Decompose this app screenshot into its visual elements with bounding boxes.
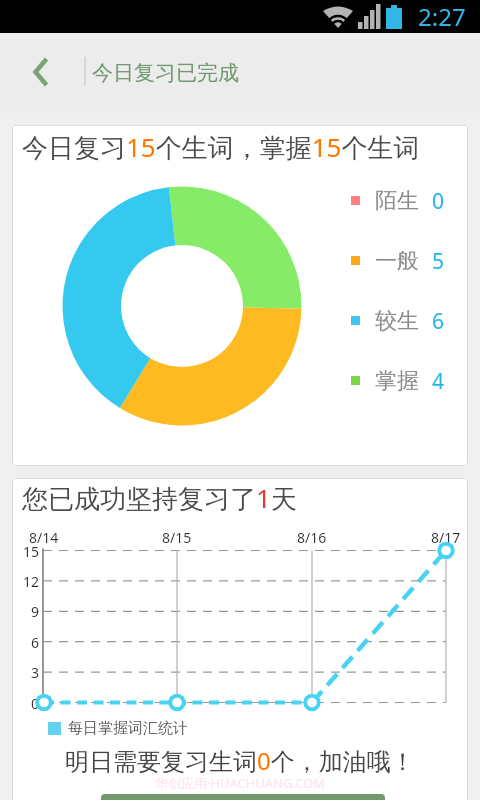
staticText: 15 xyxy=(23,542,40,561)
staticText: 6 xyxy=(432,307,445,336)
staticText: 5 xyxy=(432,247,445,276)
staticText: 6 xyxy=(31,633,40,652)
staticText: 8/14 xyxy=(29,528,59,547)
staticText: 3 xyxy=(31,663,40,682)
staticText: 每日掌握词汇统计 xyxy=(68,719,188,738)
staticText: 8/17 xyxy=(431,528,461,547)
staticText: 今日复习15个生词，掌握15个生词 xyxy=(22,129,420,165)
staticText: 8/16 xyxy=(297,528,327,547)
staticText: 8/15 xyxy=(162,528,192,547)
staticText: 今日复习已完成 xyxy=(92,60,239,86)
staticText: 一般 xyxy=(375,247,419,275)
staticText: 9 xyxy=(31,602,40,621)
staticText: 华创应用·HUACHUANG.COM xyxy=(155,774,326,792)
staticText: 掌握 xyxy=(375,367,419,395)
staticText: 较生 xyxy=(375,307,419,335)
staticText: 0 xyxy=(31,694,40,713)
button[interactable] xyxy=(101,794,385,800)
button[interactable] xyxy=(20,45,72,101)
staticText: 12 xyxy=(23,572,40,591)
staticText: 明日需要复习生词0个，加油哦！ xyxy=(65,744,415,777)
staticText: 您已成功坚持复习了1天 xyxy=(22,480,297,516)
staticText: 4 xyxy=(432,367,445,396)
staticText: 0 xyxy=(432,187,445,216)
staticText: 陌生 xyxy=(375,187,419,215)
staticText: 2:27 xyxy=(418,0,466,33)
